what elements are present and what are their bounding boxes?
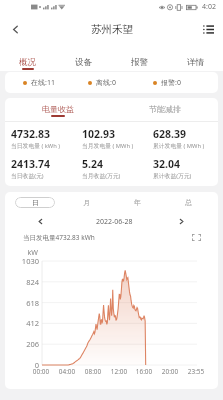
staticText: 5.24 [82, 157, 103, 171]
staticText: kW [18, 247, 38, 257]
staticText: 2413.74 [11, 157, 50, 171]
staticText: 设备 [75, 57, 92, 68]
staticText: 总 [185, 198, 192, 207]
button[interactable]: 详情 [167, 44, 223, 71]
staticText: 当日收益(元) [11, 172, 44, 180]
staticText: 12:00 [107, 367, 131, 376]
staticText: 当日发电量4732.83 kWh [23, 233, 95, 242]
staticText: 电量收益 [42, 104, 74, 114]
button[interactable]: 概况 [0, 44, 55, 71]
button[interactable]: 年 [112, 197, 163, 208]
staticText: 4:02 [202, 2, 216, 12]
button[interactable]: Fullscreen [190, 231, 202, 243]
staticText: 当月收益(万元) [82, 172, 121, 180]
staticText: 102.93 [82, 127, 115, 141]
staticText: 206 [14, 339, 39, 349]
staticText: 离线:0 [96, 78, 116, 88]
staticText: 日 [32, 198, 39, 207]
staticText: 在线:11 [31, 78, 55, 88]
button[interactable]: Back [0, 14, 30, 44]
staticText: 04:00 [55, 367, 79, 376]
button[interactable]: 日 [9, 197, 61, 208]
button[interactable]: Menu [193, 14, 223, 44]
staticText: 苏州禾望 [91, 23, 133, 36]
staticText: 报警:0 [161, 78, 181, 88]
staticText: 00:00 [29, 367, 53, 376]
button[interactable]: 节能减排 [111, 98, 218, 121]
staticText: 23:55 [184, 367, 208, 376]
staticText: 2022-06-28 [96, 217, 133, 227]
staticText: 4732.83 [11, 127, 50, 141]
staticText: 年 [134, 198, 141, 207]
staticText: 20:00 [158, 367, 182, 376]
staticText: 月 [83, 198, 90, 207]
staticText: 当日发电量 ( kWh ) [11, 142, 61, 150]
staticText: 节能减排 [149, 104, 181, 114]
staticText: 824 [14, 277, 39, 287]
staticText: 概况 [19, 57, 36, 68]
staticText: 628.39 [153, 127, 186, 141]
button[interactable]: Next day [176, 216, 187, 227]
button[interactable]: 电量收益 [5, 98, 111, 121]
button[interactable]: 总 [163, 197, 214, 208]
button[interactable]: 月 [61, 197, 112, 208]
staticText: 详情 [187, 57, 204, 68]
button[interactable]: 报警 [111, 44, 167, 71]
staticText: 32.04 [153, 157, 180, 171]
staticText: 累计收益(万元) [153, 172, 192, 180]
button[interactable]: Previous day [35, 216, 46, 227]
staticText: 0 [14, 360, 39, 370]
button[interactable]: 设备 [55, 44, 111, 71]
staticText: 1030 [14, 256, 39, 266]
staticText: 08:00 [81, 367, 105, 376]
staticText: 报警 [131, 57, 148, 68]
staticText: 618 [14, 298, 39, 308]
staticText: 16:00 [132, 367, 156, 376]
staticText: 累计发电量 ( MWh ) [153, 142, 205, 150]
staticText: 412 [14, 318, 39, 328]
staticText: 当月发电量 ( MWh ) [82, 142, 134, 150]
